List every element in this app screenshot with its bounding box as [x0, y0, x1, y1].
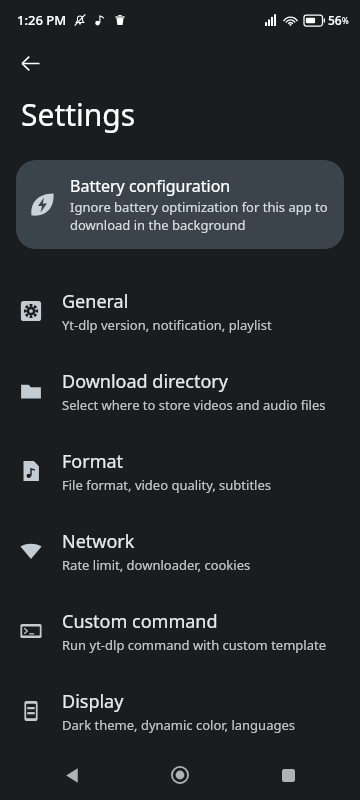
staticText: Yt-dlp version, notification, playlist — [62, 316, 272, 334]
staticText: % — [342, 15, 349, 26]
button[interactable]: Back — [18, 750, 126, 800]
button[interactable]: Network — [0, 511, 360, 591]
button[interactable]: Download directory — [0, 351, 360, 431]
button[interactable]: Battery configuration — [16, 160, 344, 249]
staticText: Network — [62, 529, 135, 554]
staticText: 56 — [328, 12, 342, 28]
staticText: General — [62, 289, 129, 314]
staticText: Select where to store videos and audio f… — [62, 396, 326, 414]
button[interactable]: Home — [126, 750, 234, 800]
staticText: Dark theme, dynamic color, languages — [62, 716, 295, 734]
staticText: Rate limit, downloader, cookies — [62, 556, 251, 574]
staticText: 1:26 PM — [17, 11, 67, 29]
button[interactable]: Back — [8, 41, 52, 85]
staticText: Battery configuration — [70, 175, 231, 197]
staticText: Run yt-dlp command with custom template — [62, 636, 327, 654]
button[interactable]: Recent apps — [234, 750, 342, 800]
staticText: File format, video quality, subtitles — [62, 476, 272, 494]
staticText: Ignore battery optimization for this app… — [70, 198, 330, 234]
staticText: Settings — [21, 94, 136, 135]
button[interactable]: Format — [0, 431, 360, 511]
staticText: Display — [62, 689, 124, 714]
staticText: Download directory — [62, 369, 228, 394]
staticText: Custom command — [62, 609, 218, 634]
button[interactable]: Custom command — [0, 591, 360, 671]
staticText: Format — [62, 449, 124, 474]
button[interactable]: Display — [0, 671, 360, 751]
button[interactable]: General — [0, 271, 360, 351]
